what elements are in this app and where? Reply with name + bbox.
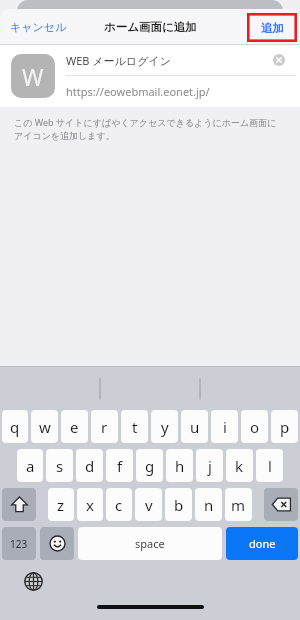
staticText: r [101, 417, 108, 437]
button[interactable]: Backspace [264, 488, 298, 521]
button[interactable]: s [46, 449, 73, 482]
button[interactable]: 123 [2, 527, 36, 560]
button[interactable]: 追加 [247, 13, 297, 42]
button[interactable]: w [31, 410, 58, 443]
button[interactable]: x [77, 488, 103, 521]
button[interactable]: g [136, 449, 163, 482]
button[interactable]: j [196, 449, 223, 482]
button[interactable]: h [166, 449, 193, 482]
button[interactable]: d [76, 449, 103, 482]
button[interactable]: p [271, 410, 298, 443]
staticText: f [117, 456, 123, 476]
staticText: o [250, 417, 260, 437]
button[interactable]: Clear text [270, 51, 288, 69]
button[interactable]: Emoji [40, 527, 74, 560]
staticText: w [39, 417, 51, 437]
staticText: j [208, 456, 212, 476]
staticText: キャンセル [10, 20, 67, 34]
button[interactable]: z [48, 488, 74, 521]
button[interactable]: Shift [2, 488, 36, 521]
staticText: p [280, 417, 290, 437]
staticText: d [85, 456, 95, 476]
button[interactable]: done [226, 527, 298, 560]
staticText: https://eowebmail.eonet.jp/ [66, 84, 210, 99]
staticText: l [268, 456, 272, 476]
staticText: done [249, 536, 276, 551]
button[interactable]: b [165, 488, 192, 521]
button[interactable]: m [225, 488, 252, 521]
button[interactable]: キャンセル [6, 15, 71, 39]
button[interactable]: Change keyboard language [22, 570, 44, 592]
button[interactable]: l [256, 449, 283, 482]
button[interactable]: k [226, 449, 253, 482]
staticText: m [231, 495, 246, 515]
staticText: W [22, 61, 44, 92]
staticText: i [223, 417, 227, 437]
staticText: space [135, 536, 165, 551]
button[interactable]: u [181, 410, 208, 443]
button[interactable]: e [61, 410, 88, 443]
staticText: y [161, 417, 169, 437]
button[interactable]: y [151, 410, 178, 443]
staticText: x [86, 495, 94, 515]
button[interactable]: a [17, 449, 43, 482]
staticText: a [26, 456, 35, 476]
staticText: b [174, 495, 184, 515]
staticText: 追加 [261, 21, 284, 35]
staticText: ホーム画面に追加 [104, 20, 197, 34]
button[interactable]: c [106, 488, 132, 521]
button[interactable]: q [2, 410, 28, 443]
staticText: e [70, 417, 79, 437]
button[interactable]: o [241, 410, 268, 443]
staticText: g [145, 456, 155, 476]
staticText: n [204, 495, 214, 515]
staticText: この Web サイトにすばやくアクセスできるようにホーム画面に アイコンを追加し… [14, 116, 277, 141]
staticText: h [175, 456, 185, 476]
button[interactable]: r [91, 410, 118, 443]
button[interactable]: v [135, 488, 162, 521]
staticText: k [235, 456, 244, 476]
staticText: z [57, 495, 65, 515]
staticText: s [56, 456, 64, 476]
button[interactable]: n [195, 488, 222, 521]
staticText: c [115, 495, 123, 515]
button[interactable]: space [78, 527, 222, 560]
staticText: u [190, 417, 200, 437]
staticText: q [10, 417, 20, 437]
button[interactable]: i [211, 410, 238, 443]
button[interactable]: f [106, 449, 133, 482]
staticText: t [132, 417, 138, 437]
button[interactable]: t [121, 410, 148, 443]
staticText: 123 [10, 537, 28, 551]
staticText: WEB メールログイン [66, 53, 171, 68]
staticText: v [145, 495, 153, 515]
